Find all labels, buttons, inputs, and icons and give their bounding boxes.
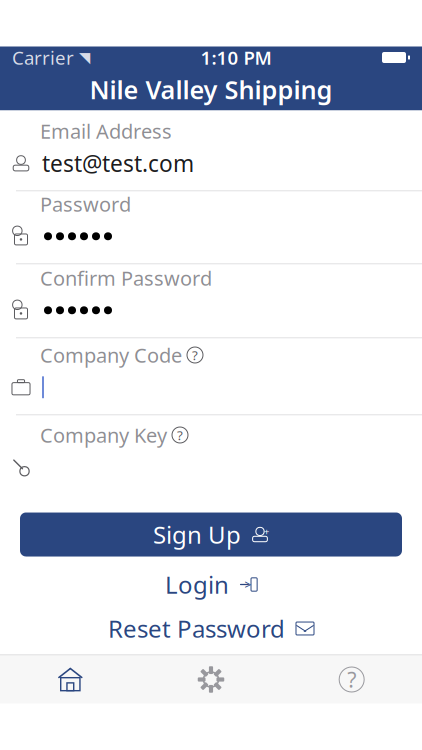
staticText: Carrier — [12, 45, 74, 70]
staticText: Confirm Password — [40, 265, 212, 291]
staticText: ? — [177, 426, 183, 444]
staticText: ? — [192, 346, 198, 364]
staticText: Company Key — [40, 422, 167, 448]
button[interactable]: Help about Company Code — [187, 347, 203, 363]
staticText: Login — [165, 569, 229, 600]
button[interactable]: Settings — [141, 655, 281, 703]
staticText: Password — [40, 191, 131, 217]
staticText: Nile Valley Shipping — [89, 73, 332, 106]
staticText: ◥ — [79, 49, 90, 66]
staticText: Sign Up — [153, 519, 241, 550]
button[interactable]: Login — [147, 566, 275, 602]
button[interactable]: Help about Company Key — [172, 427, 188, 443]
button[interactable]: Home — [0, 655, 141, 703]
staticText: > — [244, 576, 251, 592]
staticText: + — [264, 525, 269, 538]
button[interactable]: Sign Up — [20, 512, 402, 556]
staticText: ? — [347, 665, 356, 694]
button[interactable]: Reset Password — [90, 610, 332, 646]
button[interactable]: Help — [281, 655, 422, 703]
staticText: Reset Password — [108, 613, 285, 644]
staticText: 1:10 PM — [200, 45, 271, 70]
staticText: test@test.com — [42, 148, 194, 178]
staticText: Company Code — [40, 342, 182, 368]
staticText: Email Address — [40, 118, 172, 144]
